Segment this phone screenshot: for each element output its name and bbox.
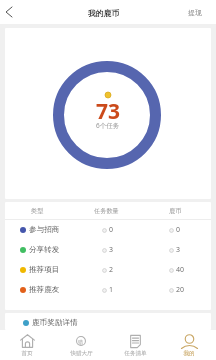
staticText: 推荐鹿友 xyxy=(29,285,60,295)
staticText: 3 xyxy=(109,245,114,255)
button[interactable]: Back xyxy=(0,0,20,24)
staticText: 首页 xyxy=(21,350,33,357)
staticText: 0 xyxy=(109,225,114,235)
button[interactable]: 提现 xyxy=(188,0,216,24)
button[interactable]: 分享转发 xyxy=(5,240,211,260)
staticText: 0 xyxy=(176,225,181,235)
staticText: 我的 xyxy=(183,350,195,357)
staticText: 类型 xyxy=(31,207,44,215)
staticText: 任务数量 xyxy=(94,207,119,215)
button[interactable]: 推荐鹿友 xyxy=(5,280,211,300)
staticText: 73 xyxy=(96,97,121,126)
staticText: 6个任务 xyxy=(96,121,120,130)
staticText: 2 xyxy=(109,265,114,275)
staticText: 3 xyxy=(176,245,181,255)
button[interactable]: Hall xyxy=(54,330,108,360)
staticText: 快猎大厅 xyxy=(70,350,93,357)
staticText: 任务清单 xyxy=(124,350,147,357)
staticText: 鹿币奖励详情 xyxy=(32,318,78,328)
button[interactable]: Task list xyxy=(108,330,162,360)
staticText: 我的鹿币 xyxy=(88,8,120,18)
staticText: 参与招商 xyxy=(29,225,60,235)
staticText: 分享转发 xyxy=(29,245,60,255)
staticText: 猎 xyxy=(78,339,84,346)
staticText: 提现 xyxy=(188,8,202,17)
staticText: 1 xyxy=(109,285,114,295)
staticText: 40 xyxy=(176,265,185,275)
button[interactable]: 推荐项目 xyxy=(5,260,211,280)
staticText: 20 xyxy=(176,285,185,295)
staticText: 鹿币 xyxy=(169,207,182,215)
button[interactable]: Profile xyxy=(162,330,216,360)
staticText: 推荐项目 xyxy=(29,265,60,275)
button[interactable]: 参与招商 xyxy=(5,220,211,240)
button[interactable]: 鹿币奖励详情 xyxy=(5,313,211,330)
button[interactable]: Home xyxy=(0,330,54,360)
